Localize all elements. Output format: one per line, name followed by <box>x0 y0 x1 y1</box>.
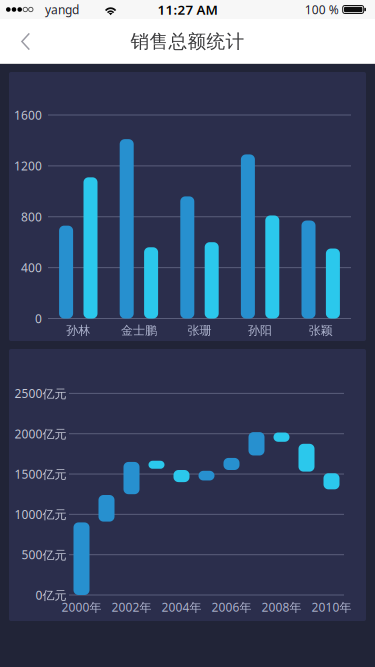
staticText: 2006年 <box>211 599 251 615</box>
staticText: 0 <box>35 310 42 326</box>
staticText: yangd <box>45 1 79 17</box>
staticText: 1000亿元 <box>14 506 66 522</box>
staticText: 2000年 <box>61 599 101 615</box>
button[interactable]: Back <box>0 21 46 62</box>
staticText: 销售总额统计 <box>130 30 244 53</box>
staticText: 2002年 <box>111 599 151 615</box>
staticText: 1200 <box>14 158 42 174</box>
staticText: 2004年 <box>161 599 201 615</box>
staticText: 400 <box>21 260 42 276</box>
staticText: 800 <box>21 209 42 225</box>
staticText: 金士鹏 <box>121 323 157 338</box>
staticText: 100 % <box>305 1 339 17</box>
staticText: 2008年 <box>261 599 301 615</box>
staticText: 2010年 <box>311 599 351 615</box>
staticText: 2500亿元 <box>14 385 66 401</box>
staticText: 张珊 <box>187 323 211 338</box>
staticText: 2000亿元 <box>14 426 66 442</box>
staticText: 1500亿元 <box>14 466 66 482</box>
staticText: 0亿元 <box>35 587 66 603</box>
staticText: 张颖 <box>309 323 333 338</box>
staticText: 11:27 AM <box>157 1 217 18</box>
staticText: 500亿元 <box>21 547 66 563</box>
staticText: 孙林 <box>66 323 90 338</box>
staticText: 1600 <box>14 107 42 123</box>
staticText: 孙阳 <box>248 323 272 338</box>
